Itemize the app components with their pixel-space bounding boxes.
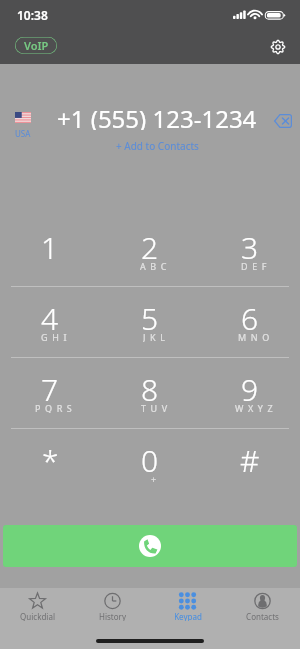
button[interactable]: #	[200, 428, 300, 499]
staticText: ABC	[140, 260, 172, 271]
button[interactable]: 6	[200, 286, 300, 357]
button[interactable]: 8	[100, 357, 200, 428]
staticText: TUV	[141, 402, 172, 413]
staticText: 10:38	[17, 7, 48, 23]
staticText: 9	[241, 369, 259, 409]
button[interactable]: + Add to Contacts	[116, 139, 199, 152]
button[interactable]: Settings	[267, 36, 289, 58]
button[interactable]: 1	[0, 215, 100, 286]
button[interactable]: History	[75, 588, 150, 626]
button[interactable]: 9	[200, 357, 300, 428]
staticText: 4	[41, 298, 59, 338]
staticText: GHI	[41, 331, 72, 342]
staticText: PQRS	[35, 402, 77, 413]
button[interactable]: 3	[200, 215, 300, 286]
staticText: Keypad	[174, 611, 202, 621]
button[interactable]: 0	[100, 428, 200, 499]
staticText: DEF	[241, 260, 272, 271]
button[interactable]: 4	[0, 286, 100, 357]
staticText: USA	[15, 128, 31, 139]
button[interactable]: 7	[0, 357, 100, 428]
staticText: 2	[141, 227, 159, 267]
button[interactable]: 2	[100, 215, 200, 286]
staticText: #	[240, 440, 260, 480]
staticText: WXYZ	[235, 402, 278, 413]
button[interactable]: Keypad	[150, 588, 225, 626]
button[interactable]: Backspace	[272, 110, 294, 132]
staticText: 3	[241, 227, 259, 267]
button[interactable]: VoIP	[15, 37, 57, 54]
staticText: +1 (555) 123-1234	[57, 102, 257, 130]
button[interactable]: *	[0, 428, 100, 499]
staticText: 0	[141, 440, 159, 480]
button[interactable]: Select country, USA	[14, 112, 32, 139]
staticText: JKL	[143, 331, 170, 342]
staticText: *	[42, 440, 59, 480]
staticText: History	[99, 611, 126, 621]
staticText: +	[151, 473, 161, 484]
staticText: 7	[41, 369, 59, 409]
staticText: VoIP	[24, 38, 49, 53]
staticText: Contacts	[246, 611, 279, 621]
staticText: 5	[141, 298, 159, 338]
staticText: 8	[141, 369, 159, 409]
staticText: + Add to Contacts	[116, 139, 199, 152]
staticText: Quickdial	[20, 611, 55, 621]
staticText: 1	[41, 227, 59, 267]
button[interactable]: Contacts	[225, 588, 300, 626]
staticText: 6	[241, 298, 259, 338]
button[interactable]: Quickdial	[0, 588, 75, 626]
button[interactable]: 5	[100, 286, 200, 357]
staticText: MNO	[238, 331, 274, 342]
button[interactable]: Call	[3, 525, 297, 567]
